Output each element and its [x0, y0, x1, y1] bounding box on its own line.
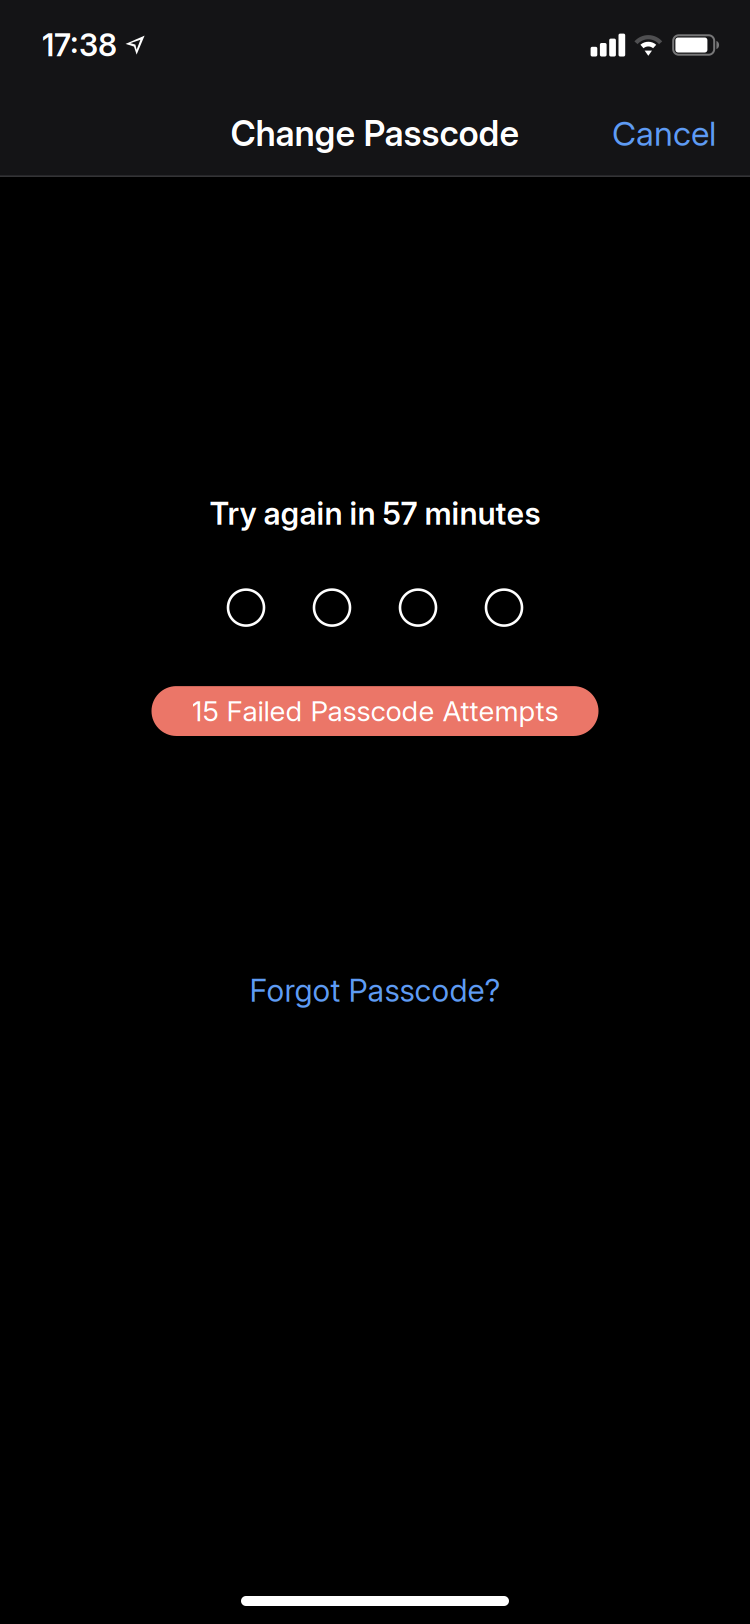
button[interactable]: Forgot Passcode? — [225, 960, 524, 1021]
staticText: Change Passcode — [230, 112, 519, 154]
staticText: 17:38 — [42, 26, 117, 63]
staticText: Try again in 57 minutes — [209, 495, 540, 532]
button[interactable]: Cancel — [595, 97, 733, 170]
staticText: 15 Failed Passcode Attempts — [191, 694, 558, 728]
staticText: Forgot Passcode? — [249, 972, 500, 1009]
staticText: Cancel — [612, 113, 716, 154]
